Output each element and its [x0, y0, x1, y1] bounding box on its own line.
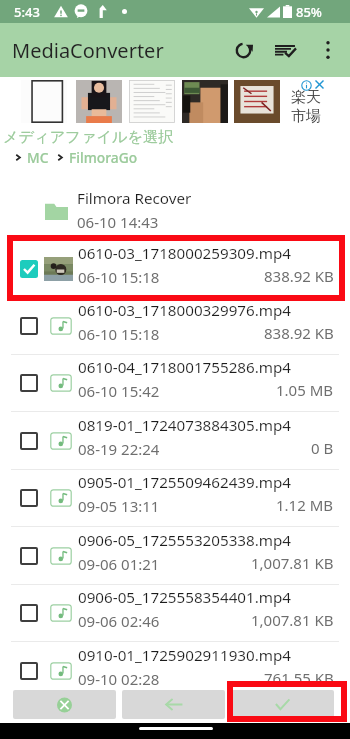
- button[interactable]: 0610-04_1718001755286.mp4: [0, 354, 350, 411]
- staticText: 楽天: [291, 88, 321, 107]
- staticText: 0819-01_1724073884305.mp4: [78, 415, 291, 436]
- staticText: 838.92 KB: [264, 266, 334, 286]
- button[interactable]: Ad image: [129, 80, 175, 123]
- button[interactable]: Cancel: [13, 690, 116, 719]
- staticText: 0610-03_1718000259309.mp4: [78, 243, 291, 264]
- staticText: 0610-03_1718000329976.mp4: [78, 300, 291, 321]
- button[interactable]: Select all: [267, 32, 303, 68]
- button[interactable]: Ad info: [301, 80, 312, 91]
- button[interactable]: 0610-03_1718000329976.mp4: [0, 297, 350, 354]
- staticText: 0910-01_1725902911930.mp4: [78, 645, 291, 666]
- staticText: 09-06 02:46: [78, 611, 160, 631]
- staticText: 09-05 13:11: [78, 496, 160, 516]
- staticText: 06-10 15:42: [78, 381, 160, 401]
- staticText: 838.92 KB: [264, 323, 334, 343]
- button[interactable]: 0910-01_1725902911930.mp4: [0, 642, 350, 699]
- staticText: 1,007.81 KB: [251, 553, 334, 573]
- button[interactable]: Confirm: [231, 690, 334, 719]
- button[interactable]: FilmoraGo: [69, 148, 138, 167]
- staticText: 0906-05_1725553205338.mp4: [78, 530, 291, 551]
- staticText: メディアファイルを選択: [3, 127, 174, 146]
- staticText: 1,007.81 KB: [251, 610, 334, 630]
- button[interactable]: 0610-03_1718000259309.mp4: [0, 240, 350, 297]
- button[interactable]: More options: [310, 32, 346, 68]
- staticText: 06-10 15:18: [78, 324, 160, 344]
- staticText: 1.05 MB: [276, 380, 334, 400]
- staticText: MediaConverter: [12, 37, 164, 64]
- staticText: FilmoraGo: [69, 148, 138, 167]
- staticText: 5:43: [14, 3, 40, 21]
- staticText: 市場: [291, 107, 321, 126]
- button[interactable]: MC: [27, 148, 49, 167]
- staticText: 0610-04_1718001755286.mp4: [78, 357, 291, 378]
- staticText: 06-10 15:18: [78, 267, 160, 287]
- staticText: 06-10 14:43: [77, 212, 159, 232]
- button[interactable]: 0906-05_1725558354401.mp4: [0, 584, 350, 641]
- button[interactable]: Close ad: [315, 80, 324, 89]
- staticText: 761.55 KB: [264, 668, 334, 688]
- staticText: 85%: [296, 3, 322, 21]
- button[interactable]: Back: [122, 690, 225, 719]
- button[interactable]: 0905-01_1725509462439.mp4: [0, 469, 350, 526]
- button[interactable]: Filmora Recover: [0, 182, 350, 239]
- button[interactable]: 0906-05_1725553205338.mp4: [0, 527, 350, 584]
- button[interactable]: Ad image: [21, 80, 67, 123]
- staticText: 0905-01_1725509462439.mp4: [78, 472, 291, 493]
- staticText: Filmora Recover: [77, 188, 192, 209]
- button[interactable]: Ad image: [76, 80, 122, 123]
- button[interactable]: Ad image: [182, 80, 228, 123]
- staticText: 09-10 02:28: [78, 669, 160, 689]
- staticText: MC: [27, 148, 49, 167]
- staticText: 0 B: [311, 438, 334, 458]
- staticText: 1.12 MB: [276, 495, 334, 515]
- button[interactable]: Ad image: [234, 80, 280, 123]
- button[interactable]: 0819-01_1724073884305.mp4: [0, 412, 350, 469]
- button[interactable]: Refresh: [225, 32, 261, 68]
- staticText: 08-19 22:24: [78, 439, 160, 459]
- staticText: 0906-05_1725558354401.mp4: [78, 587, 291, 608]
- staticText: 09-06 01:21: [78, 554, 160, 574]
